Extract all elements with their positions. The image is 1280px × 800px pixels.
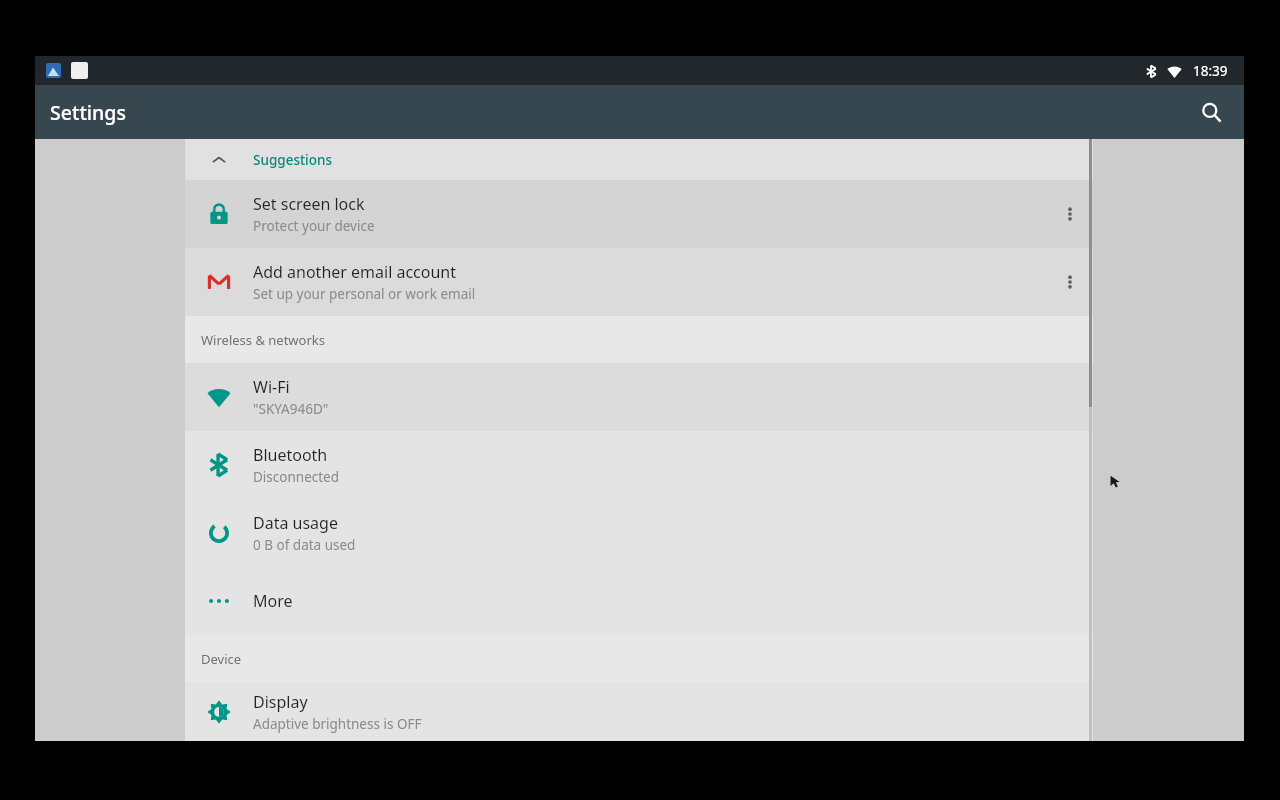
staticText: Add another email account <box>253 261 457 283</box>
staticText: Wireless & networks <box>201 331 325 349</box>
staticText: Settings <box>50 99 126 126</box>
staticText: Set screen lock <box>253 193 365 215</box>
staticText: Suggestions <box>253 151 333 169</box>
button[interactable]: Search <box>1188 89 1234 135</box>
button[interactable]: Display <box>185 682 1093 741</box>
button[interactable]: Data usage <box>185 499 1093 567</box>
button[interactable]: Set screen lock <box>185 180 1093 248</box>
staticText: More <box>253 590 293 612</box>
button[interactable]: More options <box>1047 180 1093 248</box>
staticText: Display <box>253 691 308 713</box>
button[interactable]: More <box>185 567 1093 635</box>
staticText: Data usage <box>253 512 338 534</box>
staticText: Adaptive brightness is OFF <box>253 715 422 733</box>
button[interactable]: More options <box>1047 248 1093 316</box>
staticText: 18:39 <box>1193 62 1228 80</box>
staticText: Wi-Fi <box>253 376 290 398</box>
staticText: "SKYA946D" <box>253 400 329 418</box>
staticText: Device <box>201 650 242 668</box>
staticText: Bluetooth <box>253 444 328 466</box>
button[interactable]: Wi-Fi <box>185 363 1093 431</box>
button[interactable]: Add another email account <box>185 248 1093 316</box>
staticText: Disconnected <box>253 468 340 486</box>
staticText: 0 B of data used <box>253 536 356 554</box>
staticText: Protect your device <box>253 217 375 235</box>
staticText: Set up your personal or work email <box>253 285 476 303</box>
button[interactable]: Bluetooth <box>185 431 1093 499</box>
button[interactable]: Suggestions <box>185 139 1093 180</box>
